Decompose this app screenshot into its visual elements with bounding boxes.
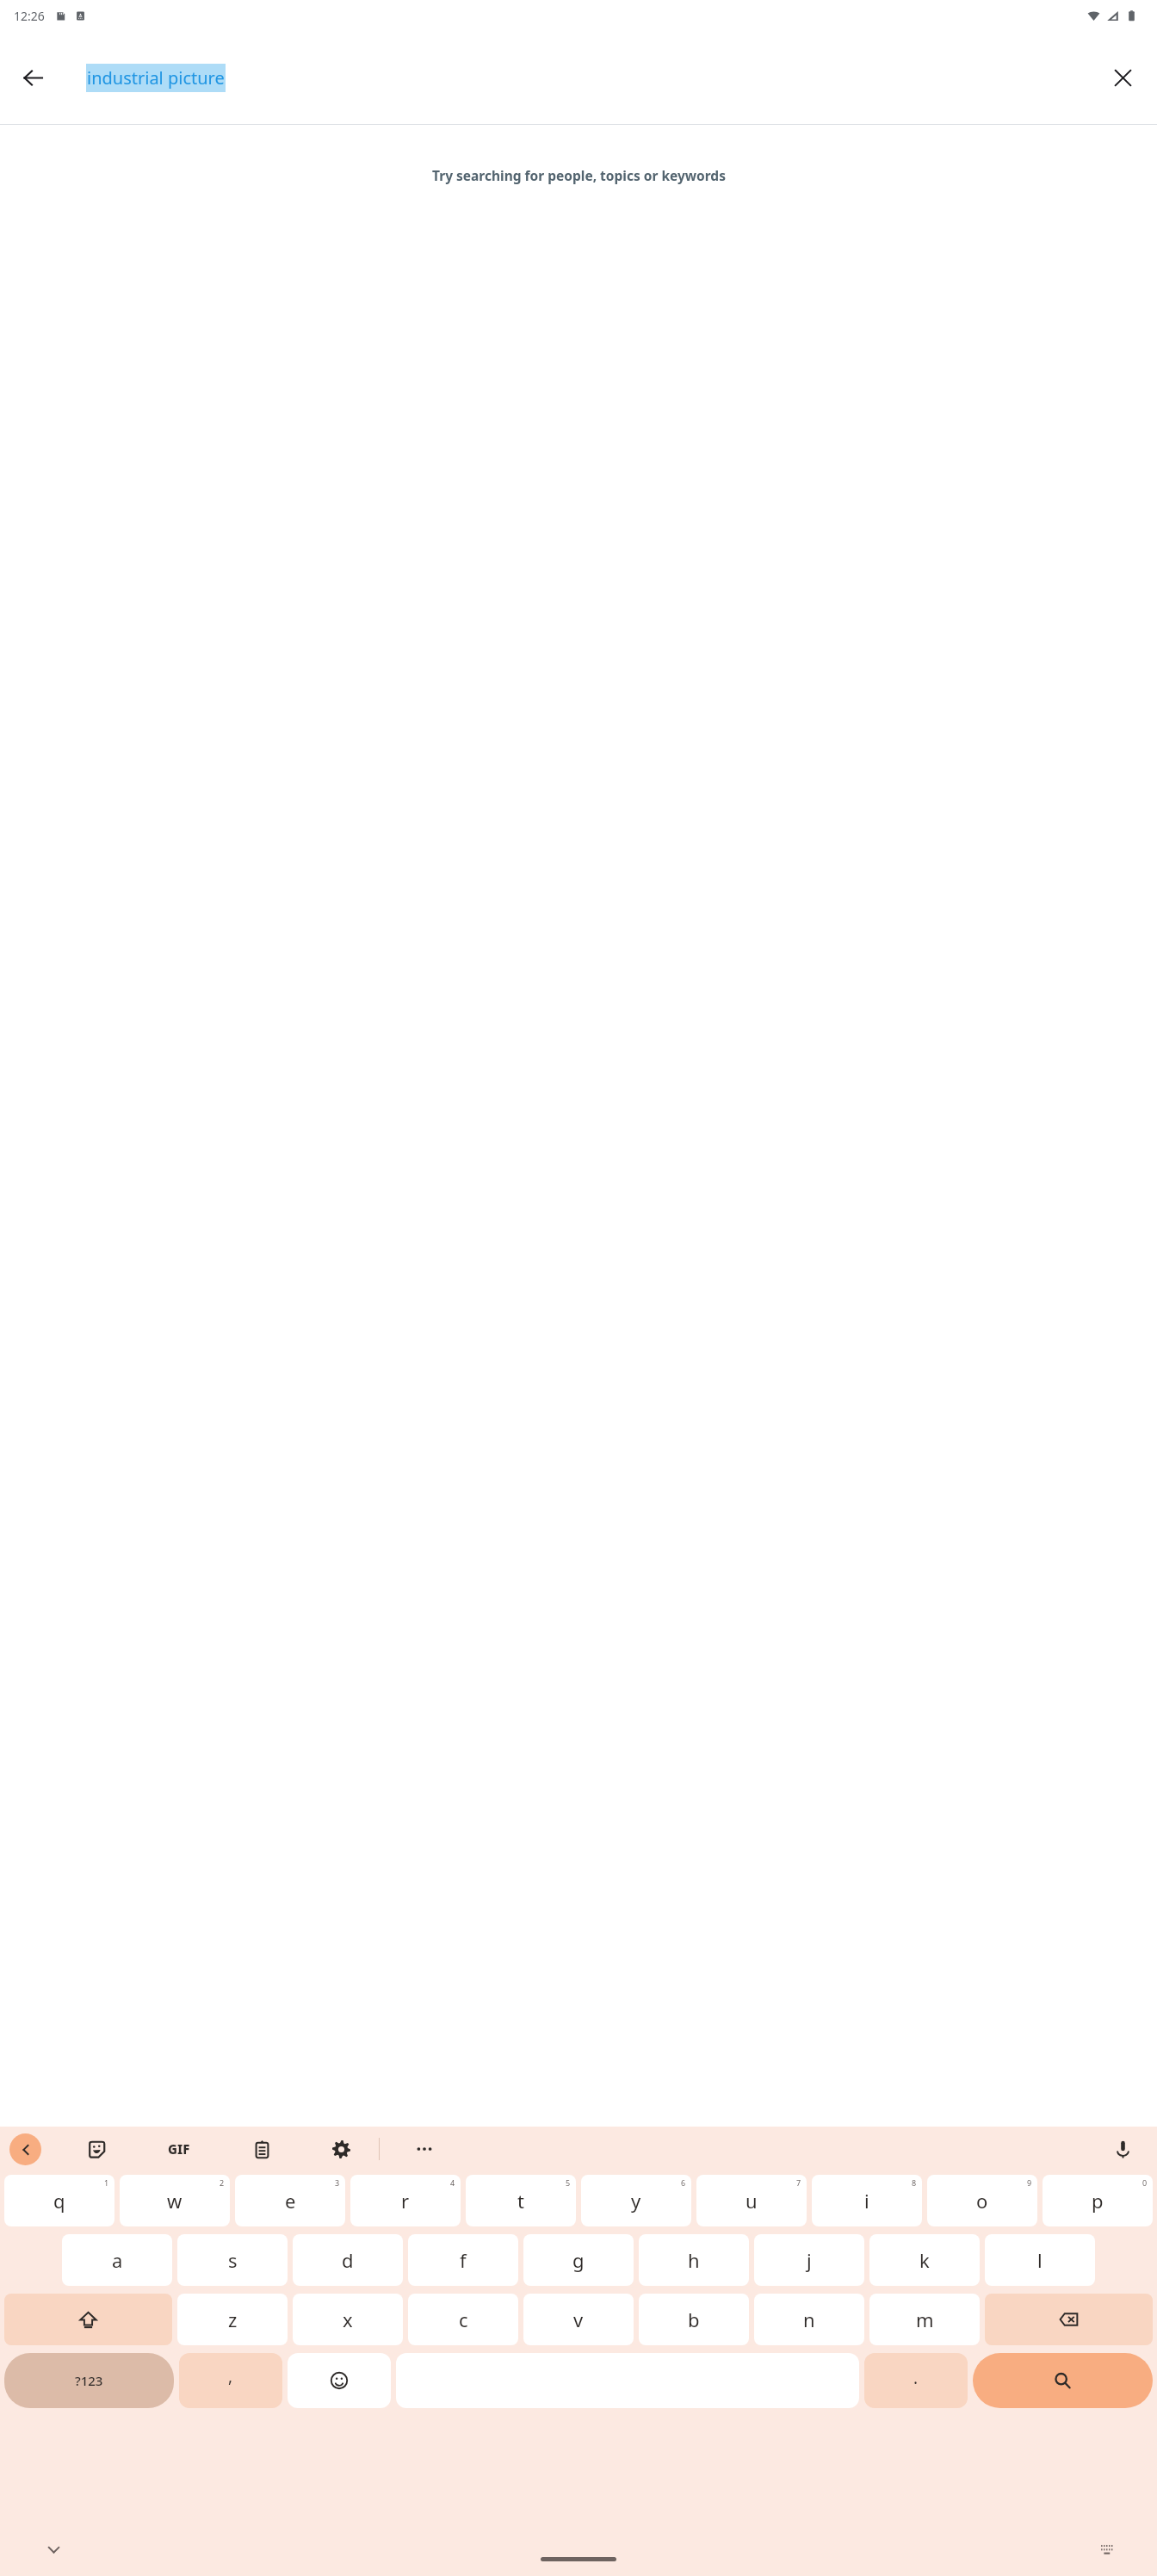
button[interactable]: Space	[396, 2353, 859, 2408]
staticText: y	[631, 2188, 641, 2214]
staticText: f	[460, 2247, 467, 2273]
button[interactable]: ?123	[4, 2353, 174, 2408]
staticText: d	[342, 2247, 354, 2273]
button[interactable]: d	[293, 2234, 403, 2286]
staticText: b	[688, 2307, 700, 2332]
staticText: k	[919, 2247, 930, 2273]
button[interactable]: t	[466, 2175, 576, 2226]
button[interactable]: b	[639, 2294, 749, 2345]
staticText: 2	[220, 2177, 225, 2188]
staticText: 12:26	[14, 8, 45, 24]
staticText: e	[285, 2188, 296, 2214]
staticText: 0	[1142, 2177, 1148, 2188]
button[interactable]: w	[120, 2175, 230, 2226]
button[interactable]: c	[408, 2294, 518, 2345]
button[interactable]: k	[869, 2234, 980, 2286]
button[interactable]: r	[350, 2175, 461, 2226]
button[interactable]: Backspace	[985, 2294, 1153, 2345]
staticText: t	[517, 2188, 524, 2214]
staticText: 8	[912, 2177, 917, 2188]
button[interactable]: o	[927, 2175, 1037, 2226]
staticText: j	[807, 2247, 812, 2273]
button[interactable]: n	[754, 2294, 864, 2345]
button[interactable]: i	[812, 2175, 922, 2226]
staticText: m	[916, 2307, 934, 2332]
staticText: g	[572, 2247, 585, 2273]
staticText: z	[228, 2307, 238, 2332]
button[interactable]: j	[754, 2234, 864, 2286]
button[interactable]: Clipboard	[243, 2130, 281, 2168]
button[interactable]: e	[235, 2175, 345, 2226]
button[interactable]: h	[639, 2234, 749, 2286]
button[interactable]: y	[581, 2175, 691, 2226]
staticText: w	[167, 2188, 183, 2214]
staticText: v	[573, 2307, 584, 2332]
staticText: a	[112, 2247, 123, 2273]
button[interactable]: Voice input	[1104, 2130, 1142, 2168]
staticText: 6	[681, 2177, 686, 2188]
button[interactable]: Stickers	[77, 2130, 115, 2168]
staticText: o	[976, 2188, 988, 2214]
staticText: l	[1037, 2247, 1043, 2273]
button[interactable]: s	[177, 2234, 288, 2286]
staticText: r	[401, 2188, 410, 2214]
button[interactable]: Back	[9, 2133, 41, 2165]
button[interactable]: m	[869, 2294, 980, 2345]
button[interactable]: v	[523, 2294, 634, 2345]
staticText: 5	[566, 2177, 571, 2188]
staticText: ,	[228, 2365, 233, 2387]
button[interactable]: Settings	[322, 2130, 360, 2168]
button[interactable]: x	[293, 2294, 403, 2345]
button[interactable]: Hide keyboard	[34, 2530, 72, 2568]
button[interactable]: Back	[10, 55, 55, 100]
button[interactable]: Shift	[4, 2294, 172, 2345]
staticText: 1	[104, 2177, 109, 2188]
staticText: 7	[796, 2177, 801, 2188]
button[interactable]: q	[4, 2175, 114, 2226]
staticText: Try searching for people, topics or keyw…	[432, 166, 726, 184]
button[interactable]: Search	[973, 2353, 1153, 2408]
staticText: i	[864, 2188, 869, 2214]
button[interactable]: .	[864, 2353, 968, 2408]
button[interactable]: f	[408, 2234, 518, 2286]
button[interactable]: Switch keyboard	[1088, 2530, 1126, 2568]
staticText: q	[53, 2188, 65, 2214]
button[interactable]: GIF	[158, 2128, 200, 2170]
button[interactable]: Emoji	[288, 2353, 391, 2408]
button[interactable]: u	[696, 2175, 807, 2226]
staticText: x	[343, 2307, 353, 2332]
staticText: u	[746, 2188, 758, 2214]
staticText: h	[688, 2247, 700, 2273]
button[interactable]: l	[985, 2234, 1095, 2286]
button[interactable]: a	[62, 2234, 172, 2286]
staticText: n	[803, 2307, 815, 2332]
button[interactable]: Clear search	[1100, 55, 1145, 100]
staticText: 4	[450, 2177, 455, 2188]
staticText: industrial picture	[87, 66, 225, 90]
staticText: c	[459, 2307, 468, 2332]
staticText: GIF	[168, 2140, 190, 2158]
staticText: 9	[1027, 2177, 1032, 2188]
staticText: p	[1092, 2188, 1104, 2214]
button[interactable]: industrial picture	[86, 64, 1045, 92]
staticText: 3	[335, 2177, 340, 2188]
button[interactable]: More options	[405, 2130, 443, 2168]
staticText: s	[228, 2247, 238, 2273]
staticText: .	[913, 2367, 919, 2389]
button[interactable]: p	[1043, 2175, 1153, 2226]
staticText: ?123	[75, 2372, 103, 2389]
button[interactable]: z	[177, 2294, 288, 2345]
button[interactable]: g	[523, 2234, 634, 2286]
button[interactable]: ,	[179, 2353, 282, 2408]
